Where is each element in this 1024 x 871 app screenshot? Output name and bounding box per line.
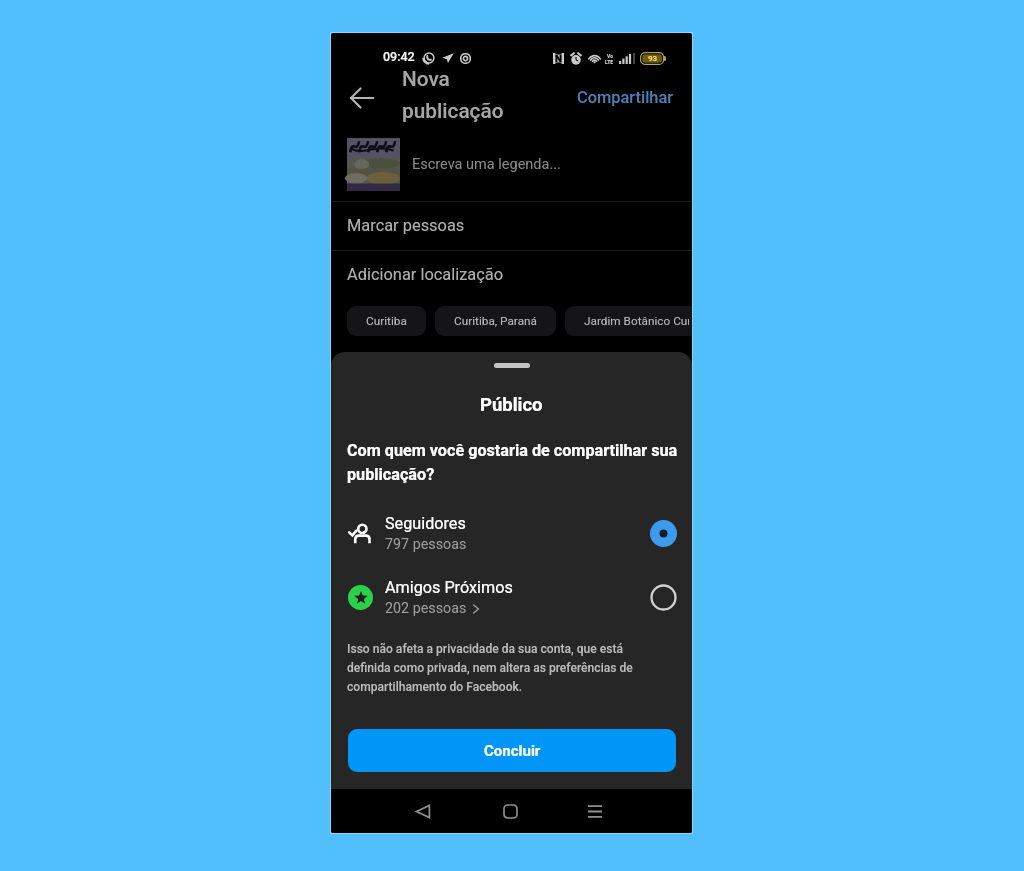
staticText: Nova publicação <box>402 67 524 123</box>
staticText: Seguidores <box>385 514 466 533</box>
button[interactable]: Adicionar localização <box>331 250 692 299</box>
button[interactable]: Recentes <box>573 789 617 833</box>
staticText: Curitiba <box>366 314 407 328</box>
staticText: Compartilhar <box>577 88 674 107</box>
staticText: 09:42 <box>383 49 415 64</box>
button[interactable]: Voltar <box>401 789 445 833</box>
button[interactable]: Curitiba, Paraná <box>435 306 556 336</box>
staticText: Escreva uma legenda... <box>412 156 561 173</box>
staticText: Adicionar localização <box>347 265 504 284</box>
staticText: 202 pessoas <box>385 600 467 617</box>
button[interactable]: Escreva uma legenda... <box>400 138 676 191</box>
staticText: Isso não afeta a privacidade da sua cont… <box>347 642 644 694</box>
staticText: Com quem você gostaria de compartilhar s… <box>347 441 679 484</box>
button[interactable]: Marcar pessoas <box>331 201 692 250</box>
staticText: LTE <box>605 59 614 65</box>
button[interactable]: Compartilhar <box>567 80 684 114</box>
staticText: Curitiba, Paraná <box>454 314 537 328</box>
button[interactable]: Seguidores <box>331 506 692 560</box>
button[interactable]: Jardim Botânico Curitiba <box>565 306 692 336</box>
button[interactable]: Início <box>488 789 532 833</box>
staticText: Jardim Botânico Curitiba <box>584 314 689 328</box>
staticText: 797 pessoas <box>385 536 467 553</box>
staticText: 93 <box>648 54 658 63</box>
button[interactable]: Concluir <box>348 729 676 772</box>
staticText: Concluir <box>484 742 541 760</box>
staticText: Marcar pessoas <box>347 216 465 235</box>
staticText: Amigos Próximos <box>385 578 513 597</box>
button[interactable]: Voltar <box>345 81 378 114</box>
button[interactable]: Curitiba <box>347 306 426 336</box>
staticText: Vo <box>607 53 613 59</box>
staticText: Público <box>480 394 543 416</box>
button[interactable]: Amigos Próximos <box>331 570 692 624</box>
